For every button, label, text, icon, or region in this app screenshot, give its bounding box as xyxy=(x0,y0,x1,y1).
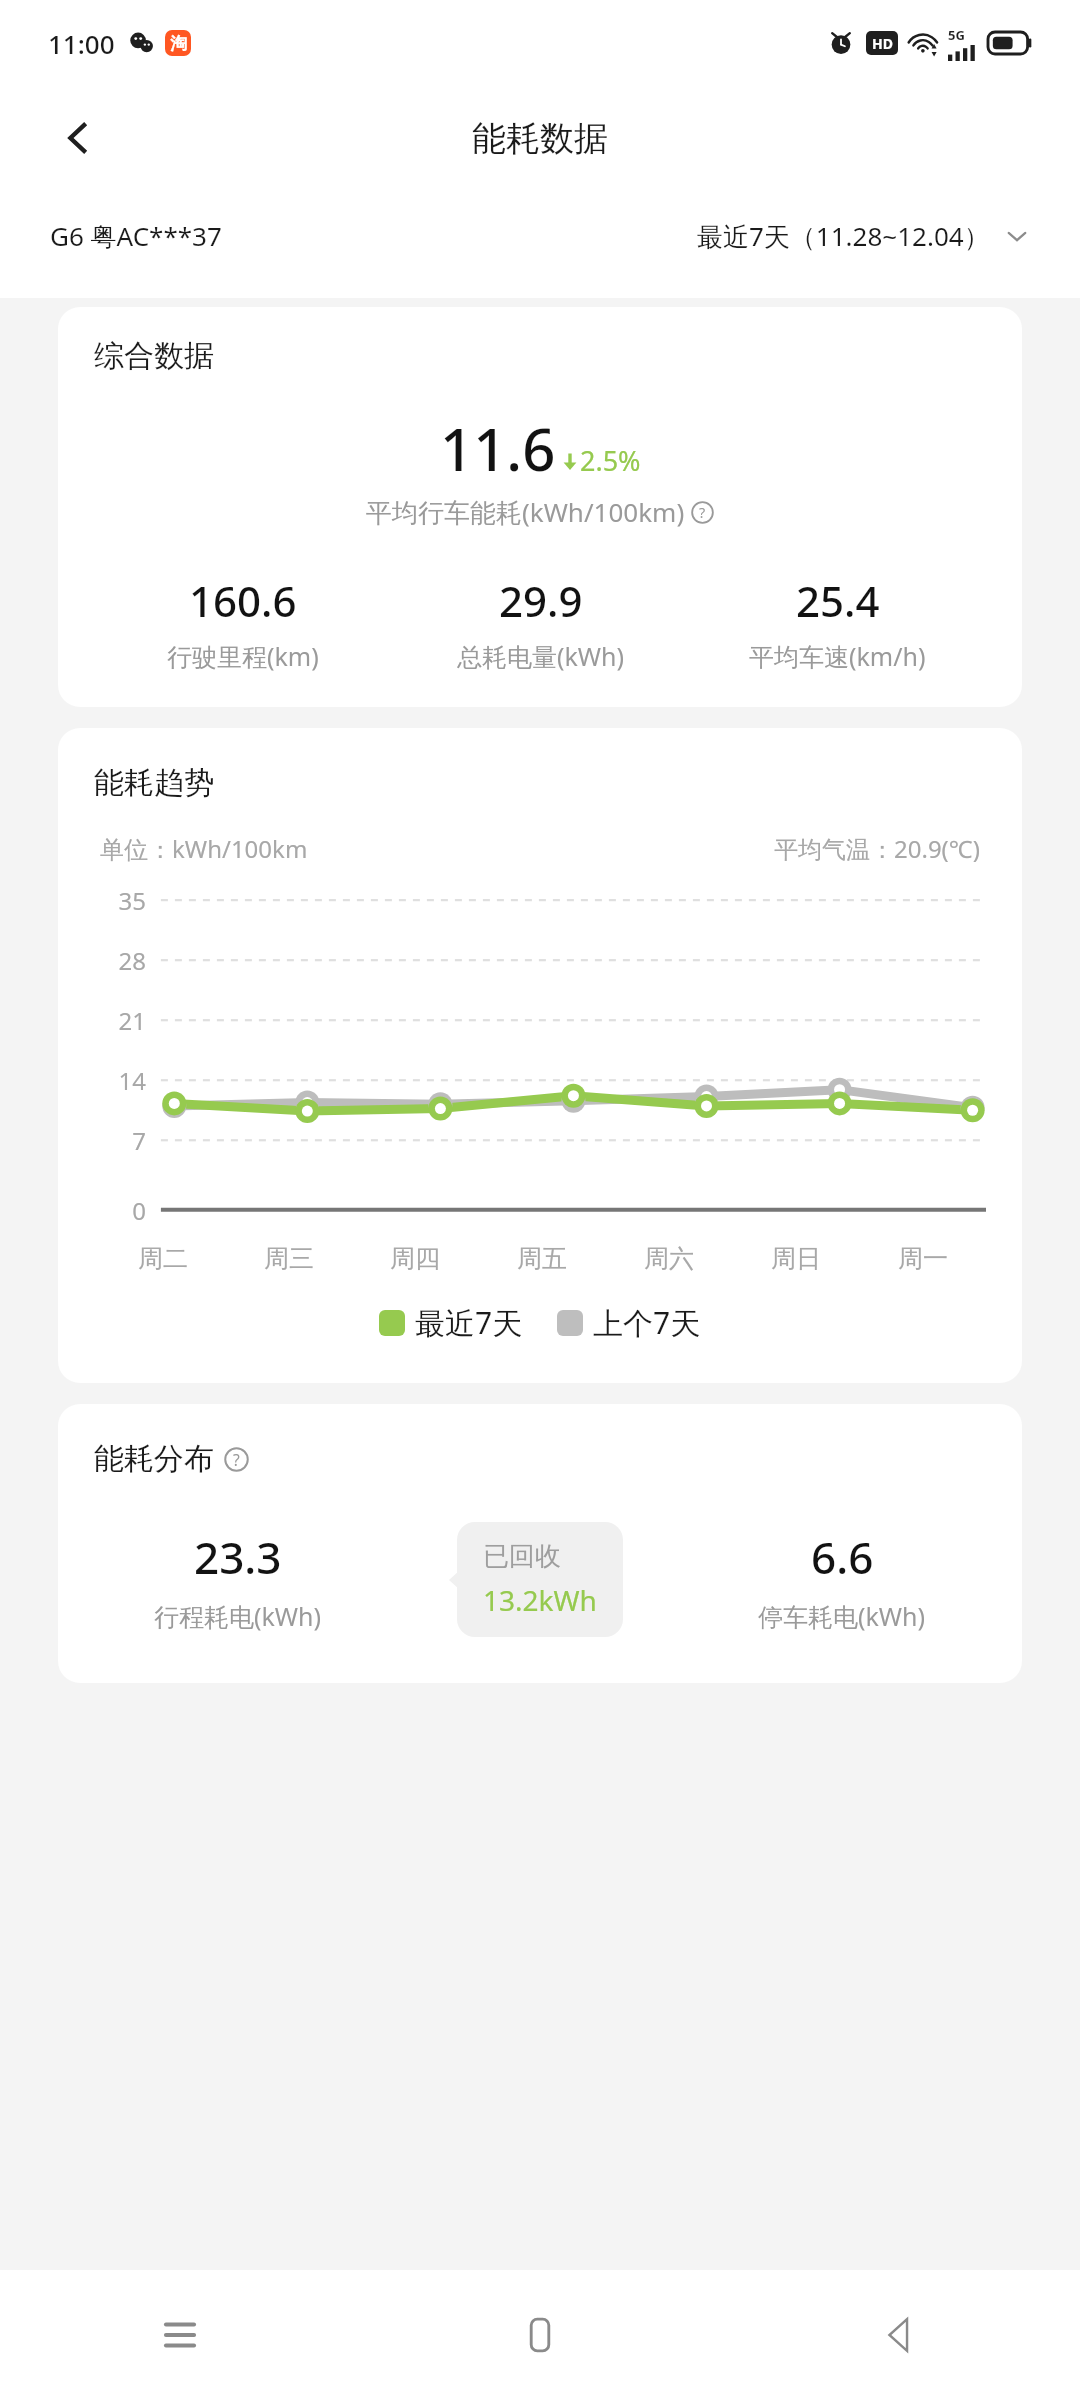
staticText: 已回收 xyxy=(483,1540,561,1573)
staticText: 周一 xyxy=(898,1243,948,1274)
button[interactable]: 已回收 xyxy=(457,1522,623,1637)
staticText: 最近7天 xyxy=(415,1302,523,1343)
button[interactable]: 能耗趋势 xyxy=(58,728,1022,1383)
button[interactable]: 综合数据 xyxy=(58,307,1022,707)
staticText: 周日 xyxy=(771,1243,821,1274)
staticText: 平均行车能耗(kWh/100km) xyxy=(366,494,685,530)
staticText: 25.4 xyxy=(796,572,880,629)
button[interactable]: Back xyxy=(720,2270,1080,2400)
staticText: 淘 xyxy=(170,33,187,54)
button[interactable]: Home xyxy=(360,2270,720,2400)
staticText: 综合数据 xyxy=(94,337,214,375)
staticText: 5G xyxy=(948,26,965,44)
staticText: G6 粤AC***37 xyxy=(50,218,222,254)
staticText: 6.6 xyxy=(811,1527,874,1587)
staticText: 2.5% xyxy=(580,442,641,479)
staticText: 最近7天（11.28~12.04） xyxy=(697,218,990,254)
button[interactable]: 最近7天 xyxy=(379,1302,523,1343)
staticText: ? xyxy=(699,503,706,522)
button[interactable]: 最近7天（11.28~12.04） xyxy=(697,212,1030,260)
staticText: 上个7天 xyxy=(593,1302,701,1343)
staticText: 行驶里程(km) xyxy=(167,639,319,673)
staticText: 14 xyxy=(94,1064,146,1097)
staticText: 周二 xyxy=(138,1243,188,1274)
staticText: 能耗分布 xyxy=(94,1440,214,1478)
staticText: ? xyxy=(233,1449,240,1470)
button[interactable]: 返回 xyxy=(40,100,116,176)
staticText: 13.2kWh xyxy=(483,1581,597,1619)
staticText: 11:00 xyxy=(48,26,115,61)
staticText: 周五 xyxy=(517,1243,567,1274)
staticText: 总耗电量(kWh) xyxy=(457,639,625,673)
staticText: 能耗数据 xyxy=(472,117,608,160)
staticText: 11.6 xyxy=(440,409,556,488)
staticText: 周三 xyxy=(264,1243,314,1274)
button[interactable]: 能耗分布 xyxy=(58,1404,1022,1683)
staticText: HD xyxy=(872,34,893,53)
staticText: 单位：kWh/100km xyxy=(100,832,308,865)
staticText: 28 xyxy=(94,944,146,977)
staticText: 7 xyxy=(94,1124,146,1157)
staticText: 行程耗电(kWh) xyxy=(154,1599,322,1633)
staticText: 35 xyxy=(94,884,146,917)
staticText: 停车耗电(kWh) xyxy=(758,1599,926,1633)
staticText: 能耗趋势 xyxy=(94,764,214,802)
button[interactable]: 上个7天 xyxy=(557,1302,701,1343)
staticText: 平均车速(km/h) xyxy=(749,639,926,673)
staticText: 0 xyxy=(94,1194,146,1227)
button[interactable]: Recents xyxy=(0,2270,360,2400)
staticText: 160.6 xyxy=(189,572,297,629)
staticText: 周四 xyxy=(390,1243,440,1274)
staticText: 平均气温：20.9(℃) xyxy=(774,832,980,865)
staticText: 23.3 xyxy=(194,1527,282,1587)
staticText: 周六 xyxy=(644,1243,694,1274)
staticText: 29.9 xyxy=(499,572,583,629)
staticText: 21 xyxy=(94,1004,146,1037)
